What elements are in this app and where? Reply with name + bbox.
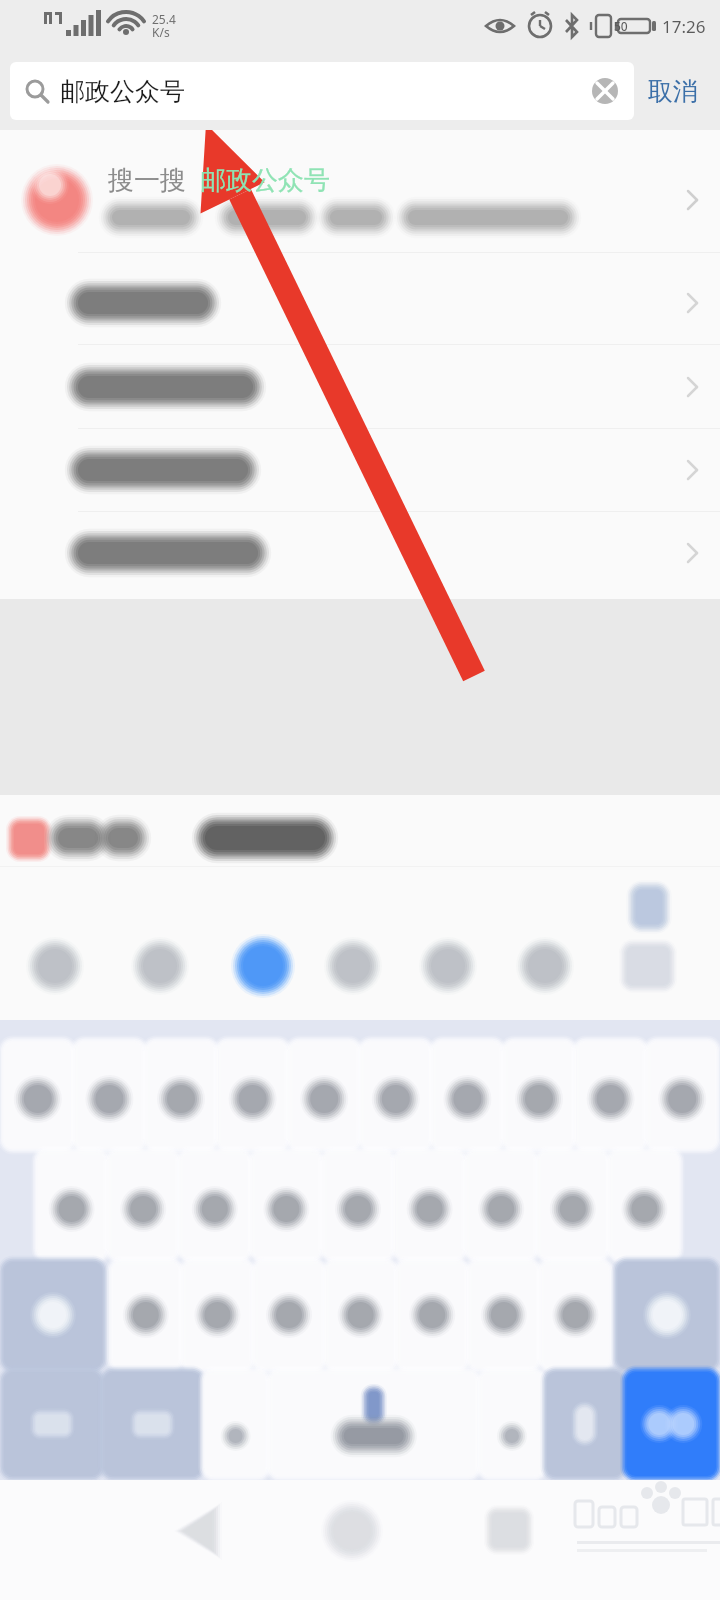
- staticText: 取消: [648, 76, 698, 107]
- button[interactable]: 搜一搜: [0, 152, 720, 248]
- staticText: 邮政公众号: [200, 164, 330, 197]
- staticText: 25.4 K/s: [152, 11, 176, 41]
- button[interactable]: [0, 514, 720, 598]
- button[interactable]: [0, 430, 720, 514]
- staticText: 搜一搜: [108, 164, 186, 197]
- button[interactable]: Clear: [590, 76, 620, 106]
- staticText: 50: [614, 18, 628, 34]
- button[interactable]: [0, 808, 720, 868]
- button[interactable]: 取消: [634, 62, 712, 120]
- staticText: 17:26: [662, 15, 706, 38]
- button[interactable]: [0, 262, 720, 346]
- button[interactable]: [0, 346, 720, 430]
- staticText: 邮政公众号: [60, 76, 590, 107]
- button[interactable]: 邮政公众号: [10, 62, 634, 120]
